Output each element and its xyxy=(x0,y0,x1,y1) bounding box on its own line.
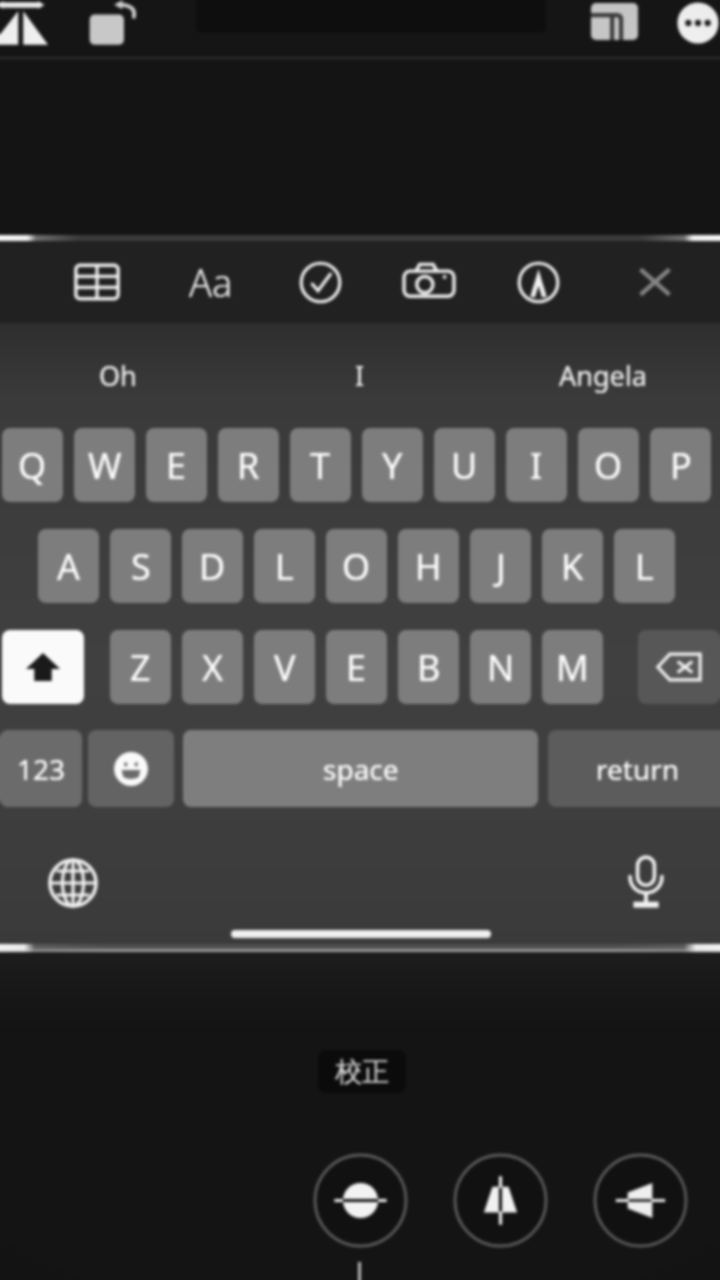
button[interactable]: Layout xyxy=(590,2,638,40)
staticText: O xyxy=(594,441,623,490)
button[interactable]: return xyxy=(548,730,720,807)
staticText: S xyxy=(131,542,151,591)
button[interactable]: Angela xyxy=(518,352,688,398)
button[interactable]: M xyxy=(542,630,603,704)
button[interactable]: 123 xyxy=(0,730,82,807)
staticText: L xyxy=(635,542,654,591)
button[interactable]: U xyxy=(434,428,495,502)
button[interactable]: Vertical perspective xyxy=(453,1153,548,1248)
button[interactable]: L xyxy=(254,529,315,603)
button[interactable]: Checklist xyxy=(275,250,365,314)
button[interactable]: Markup xyxy=(493,250,583,314)
staticText: Q xyxy=(18,441,47,490)
button[interactable]: A xyxy=(38,529,99,603)
button[interactable]: Format text xyxy=(166,250,256,314)
button[interactable]: X xyxy=(182,630,243,704)
button[interactable]: V xyxy=(254,630,315,704)
staticText: M xyxy=(556,643,589,692)
staticText: N xyxy=(487,643,515,692)
staticText: W xyxy=(88,441,122,490)
button[interactable]: K xyxy=(542,529,603,603)
staticText: I xyxy=(355,357,365,394)
staticText: J xyxy=(496,542,506,591)
staticText: space xyxy=(323,750,399,788)
button[interactable]: R xyxy=(218,428,279,502)
button[interactable]: space xyxy=(183,730,538,807)
staticText: 123 xyxy=(17,750,66,788)
button[interactable]: H xyxy=(398,529,459,603)
button[interactable]: Q xyxy=(2,428,63,502)
staticText: Angela xyxy=(559,357,647,394)
staticText: T xyxy=(310,441,331,490)
button[interactable]: Emoji xyxy=(88,730,174,807)
button[interactable]: W xyxy=(74,428,135,502)
button[interactable]: Backspace xyxy=(638,630,720,704)
button[interactable]: B xyxy=(398,630,459,704)
staticText: R xyxy=(237,441,260,490)
staticText: D xyxy=(199,542,226,591)
staticText: 校正 xyxy=(335,1055,389,1089)
staticText: U xyxy=(451,441,478,490)
staticText: V xyxy=(274,643,296,692)
button[interactable]: Oh xyxy=(42,352,194,398)
button[interactable]: S xyxy=(110,529,171,603)
staticText: I xyxy=(530,441,543,490)
button[interactable]: Camera xyxy=(384,250,474,314)
button[interactable]: Table xyxy=(52,250,142,314)
staticText: H xyxy=(415,542,442,591)
staticText: E xyxy=(346,643,367,692)
staticText: Y xyxy=(382,441,403,490)
staticText: P xyxy=(670,441,692,490)
button[interactable]: P xyxy=(650,428,711,502)
button[interactable]: T xyxy=(290,428,351,502)
staticText: B xyxy=(417,643,441,692)
button[interactable]: O xyxy=(326,529,387,603)
button[interactable]: I xyxy=(506,428,567,502)
button[interactable]: Rotate xyxy=(84,0,140,50)
staticText: Z xyxy=(130,643,151,692)
button[interactable]: J xyxy=(470,529,531,603)
button[interactable]: Keystone xyxy=(0,0,48,49)
button[interactable]: O xyxy=(578,428,639,502)
button[interactable]: I xyxy=(290,352,430,398)
button[interactable]: E xyxy=(146,428,207,502)
button[interactable]: Voice input xyxy=(617,850,675,914)
staticText: A xyxy=(57,542,81,591)
button[interactable]: Change keyboard xyxy=(44,854,102,912)
button[interactable]: Close xyxy=(610,250,700,314)
button[interactable]: E xyxy=(326,630,387,704)
button[interactable]: More options xyxy=(676,1,720,45)
staticText: Aa xyxy=(189,256,233,308)
staticText: X xyxy=(202,643,224,692)
button[interactable]: D xyxy=(182,529,243,603)
staticText: L xyxy=(275,542,294,591)
button[interactable]: Horizontal perspective xyxy=(593,1153,688,1248)
button[interactable]: N xyxy=(470,630,531,704)
staticText: E xyxy=(166,441,187,490)
button[interactable]: Shift xyxy=(2,630,84,704)
staticText: return xyxy=(596,750,680,788)
staticText: Oh xyxy=(99,357,137,394)
button[interactable]: Y xyxy=(362,428,423,502)
button[interactable]: Flip horizontal xyxy=(313,1153,408,1248)
staticText: O xyxy=(342,542,371,591)
button[interactable]: Z xyxy=(110,630,171,704)
button[interactable]: 校正 xyxy=(318,1050,406,1093)
button[interactable]: L xyxy=(614,529,675,603)
staticText: K xyxy=(561,542,584,591)
